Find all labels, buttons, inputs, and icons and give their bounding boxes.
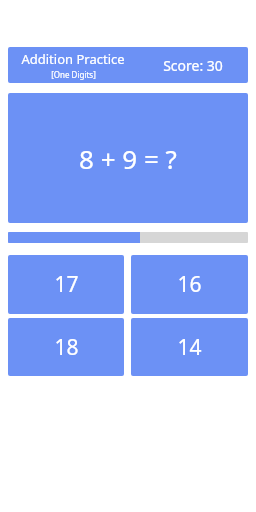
staticText: [One Digits]: [51, 69, 96, 80]
staticText: 8 + 9 = ?: [79, 141, 177, 176]
staticText: 17: [54, 270, 79, 299]
button[interactable]: 14: [131, 318, 248, 376]
button[interactable]: 18: [8, 318, 124, 376]
button[interactable]: Addition Practice: [8, 47, 248, 83]
staticText: 18: [54, 333, 79, 362]
staticText: Score: 30: [163, 56, 223, 75]
staticText: Addition Practice: [21, 50, 125, 68]
button[interactable]: 8 + 9 = ?: [8, 93, 248, 223]
staticText: 14: [177, 333, 202, 362]
button[interactable]: 16: [131, 255, 248, 314]
button[interactable]: 17: [8, 255, 124, 314]
staticText: 16: [177, 270, 202, 299]
